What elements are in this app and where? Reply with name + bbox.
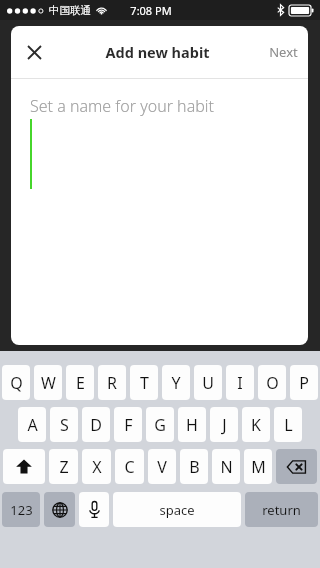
button[interactable]: H [178,407,206,442]
staticText: G [154,414,166,436]
staticText: E [76,372,85,394]
staticText: C [124,456,135,478]
staticText: Add new habit [105,42,210,62]
button[interactable]: K [242,407,270,442]
staticText: O [266,372,279,394]
button[interactable]: Close [11,29,57,75]
button[interactable]: Set a name for your habit [11,79,308,345]
button[interactable]: T [130,365,158,400]
button[interactable]: Shift [3,449,45,484]
staticText: Next [269,43,298,61]
staticText: return [262,501,301,519]
button[interactable]: Q [2,365,30,400]
button[interactable]: Z [49,449,78,484]
button[interactable]: M [244,449,272,484]
button[interactable]: Y [162,365,190,400]
staticText: V [157,456,167,478]
button[interactable]: D [82,407,110,442]
button[interactable]: I [226,365,254,400]
staticText: W [41,372,56,394]
button[interactable]: L [274,407,302,442]
staticText: F [124,414,133,436]
staticText: 123 [10,501,33,519]
button[interactable]: Voice input [79,492,109,527]
staticText: U [202,372,214,394]
button[interactable]: G [146,407,174,442]
staticText: Set a name for your habit [30,95,214,117]
staticText: X [92,456,102,478]
staticText: H [186,414,198,436]
staticText: J [222,414,227,436]
staticText: Q [10,372,23,394]
button[interactable]: F [114,407,142,442]
staticText: D [90,414,102,436]
staticText: S [60,414,69,436]
button[interactable]: J [210,407,238,442]
staticText: T [140,372,149,394]
button[interactable]: Change keyboard [44,492,75,527]
button[interactable]: return [245,492,318,527]
staticText: space [159,501,195,519]
button[interactable]: N [212,449,240,484]
button[interactable]: P [290,365,318,400]
staticText: K [251,414,261,436]
button[interactable]: B [180,449,208,484]
button[interactable]: E [66,365,94,400]
staticText: R [107,372,117,394]
button[interactable]: space [113,492,241,527]
staticText: A [27,414,38,436]
button[interactable]: W [34,365,62,400]
button[interactable]: Next [259,31,308,73]
button[interactable]: Backspace [276,449,317,484]
staticText: M [251,456,266,478]
staticText: B [189,456,200,478]
button[interactable]: X [82,449,111,484]
staticText: N [220,456,233,478]
staticText: P [299,372,309,394]
button[interactable]: S [50,407,78,442]
button[interactable]: U [194,365,222,400]
staticText: I [237,372,243,394]
button[interactable]: R [98,365,126,400]
staticText: 中国联通 [49,4,91,17]
button[interactable]: A [18,407,46,442]
button[interactable]: 123 [2,492,40,527]
staticText: Y [171,372,181,394]
button[interactable]: V [148,449,176,484]
staticText: 7:08 PM [130,3,172,18]
staticText: L [284,414,293,436]
button[interactable]: C [115,449,144,484]
staticText: Z [59,456,69,478]
button[interactable]: O [258,365,286,400]
